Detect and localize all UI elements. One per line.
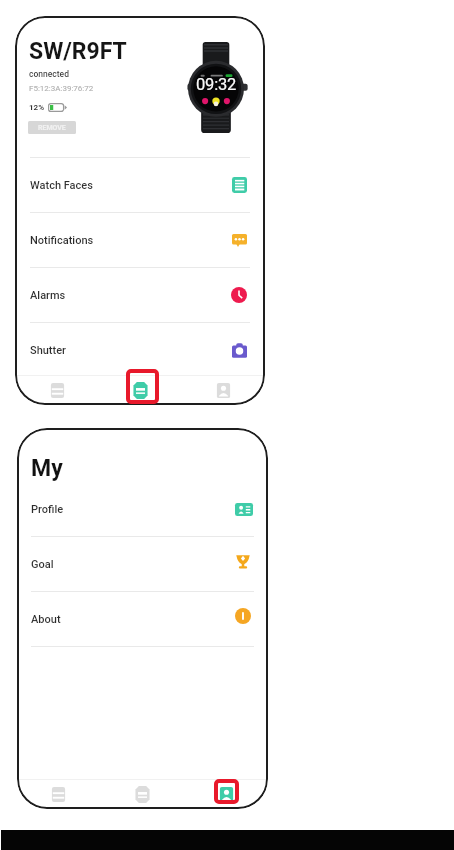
staticText: Shutter bbox=[30, 344, 66, 357]
staticText: Alarms bbox=[30, 289, 66, 302]
button[interactable]: Profile bbox=[17, 482, 268, 536]
button[interactable]: Watch Faces bbox=[15, 157, 265, 212]
button[interactable]: Watch bbox=[100, 780, 184, 809]
button[interactable]: Profile bbox=[184, 780, 268, 809]
staticText: My bbox=[31, 455, 63, 482]
staticText: 09:32 bbox=[196, 75, 237, 94]
staticText: REMOVE bbox=[38, 124, 66, 132]
staticText: Goal bbox=[31, 558, 54, 571]
staticText: Watch Faces bbox=[30, 179, 93, 192]
button[interactable]: Watch bbox=[99, 376, 182, 405]
staticText: SW/R9FT bbox=[29, 38, 127, 65]
button[interactable]: REMOVE bbox=[28, 121, 76, 134]
staticText: F5:12:3A:39:76:72 bbox=[29, 84, 94, 93]
button[interactable]: Notifications bbox=[15, 212, 265, 267]
staticText: Profile bbox=[31, 503, 64, 516]
staticText: 12% bbox=[29, 103, 45, 112]
staticText: About bbox=[31, 613, 61, 626]
button[interactable]: Profile bbox=[182, 376, 265, 405]
button[interactable]: Device bbox=[17, 780, 100, 809]
button[interactable]: Alarms bbox=[15, 267, 265, 322]
button[interactable]: Shutter bbox=[15, 322, 265, 377]
button[interactable]: Device bbox=[15, 376, 99, 405]
staticText: Notifications bbox=[30, 234, 94, 247]
button[interactable]: Goal bbox=[17, 536, 268, 591]
button[interactable]: About bbox=[17, 591, 268, 646]
staticText: connected bbox=[29, 69, 69, 79]
